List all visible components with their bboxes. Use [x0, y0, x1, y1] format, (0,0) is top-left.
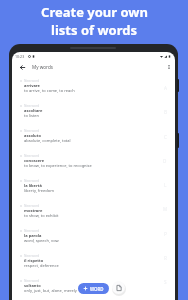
- staticText: New word: [24, 254, 40, 258]
- staticText: soltanto: [24, 283, 41, 288]
- button[interactable]: New word: [12, 124, 175, 149]
- staticText: conoscere: [24, 158, 45, 163]
- staticText: A: [164, 85, 167, 91]
- staticText: mostrare: [24, 208, 43, 213]
- button[interactable]: More options: [163, 60, 175, 74]
- button[interactable]: New word: [12, 249, 175, 274]
- staticText: liberty, freedom: [24, 188, 54, 193]
- staticText: D: [163, 158, 167, 164]
- staticText: word, speech, vow: [24, 238, 59, 243]
- staticText: to know, to experience, to recognise: [24, 163, 92, 168]
- staticText: il rispetto: [24, 258, 44, 263]
- button[interactable]: New word: [12, 99, 175, 124]
- staticText: arrivare: [24, 83, 40, 88]
- staticText: New word: [24, 179, 40, 183]
- staticText: New word: [24, 79, 40, 83]
- staticText: My words: [32, 64, 53, 70]
- staticText: New word: [24, 204, 40, 208]
- staticText: assoluto: [24, 133, 41, 138]
- button[interactable]: Add from document: [112, 281, 125, 294]
- staticText: lists of words: [51, 21, 137, 39]
- staticText: New word: [24, 129, 40, 133]
- staticText: WORD: [90, 286, 104, 292]
- staticText: New word: [24, 104, 40, 108]
- staticText: R: [164, 255, 167, 261]
- button[interactable]: WORD: [78, 283, 109, 294]
- staticText: New word: [24, 229, 40, 233]
- staticText: respect, deference: [24, 263, 59, 268]
- staticText: S: [164, 279, 167, 285]
- staticText: Create your own: [41, 3, 148, 21]
- staticText: absolute, complete, total: [24, 138, 71, 143]
- button[interactable]: New word: [12, 149, 175, 174]
- staticText: 10:23: [15, 54, 25, 59]
- staticText: B: [164, 109, 167, 115]
- button[interactable]: Back: [12, 60, 32, 74]
- staticText: only, just, but, alone, merely: [24, 288, 77, 293]
- staticText: New word: [24, 154, 40, 158]
- staticText: L: [164, 182, 167, 188]
- button[interactable]: New word: [12, 199, 175, 224]
- staticText: la libertà: [24, 183, 42, 188]
- staticText: la parola: [24, 233, 42, 238]
- staticText: M: [163, 206, 168, 212]
- staticText: ascoltare: [24, 108, 43, 113]
- button[interactable]: New word: [12, 274, 175, 299]
- button[interactable]: New word: [12, 224, 175, 249]
- button[interactable]: New word: [12, 174, 175, 199]
- staticText: P: [164, 231, 167, 237]
- staticText: C: [164, 134, 167, 140]
- staticText: to listen: [24, 113, 40, 118]
- staticText: to arrive, to come, to reach: [24, 88, 75, 93]
- staticText: to show, to exhibit: [24, 213, 59, 218]
- staticText: New word: [24, 279, 40, 283]
- button[interactable]: New word: [12, 74, 175, 99]
